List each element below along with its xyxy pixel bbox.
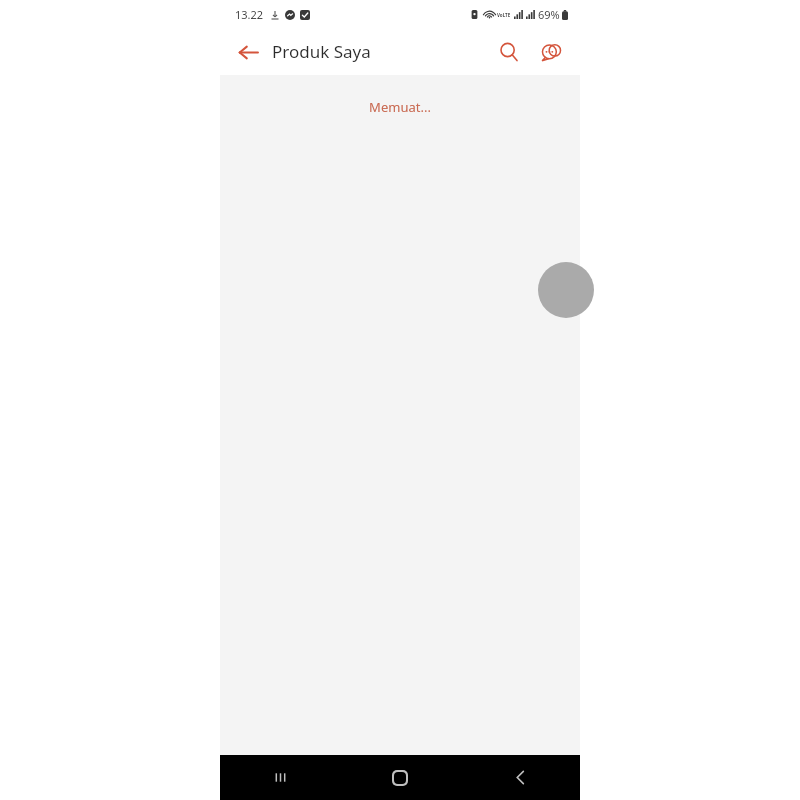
staticText: Memuat... [220,98,580,116]
button[interactable]: Home [340,755,460,800]
staticText: 13.22 [235,7,264,22]
button[interactable]: Search [488,31,530,73]
staticText: Produk Saya [272,40,371,63]
staticText: 69% [538,7,560,22]
button[interactable]: Floating action [538,262,594,318]
button[interactable]: Back [460,755,580,800]
button[interactable]: Recents [220,755,340,800]
button[interactable]: Back [228,32,268,72]
button[interactable]: Chat [530,31,572,73]
staticText: VoLTE [497,12,511,18]
